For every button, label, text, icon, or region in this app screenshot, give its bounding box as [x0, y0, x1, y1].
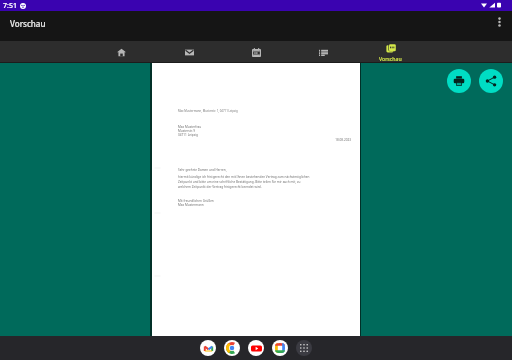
- staticText: Sehr geehrte Damen und Herren,: [178, 168, 227, 172]
- button[interactable]: More options: [490, 13, 508, 31]
- staticText: Max Mustermann, Musterstr. 1, 04711 Leip…: [178, 109, 238, 113]
- staticText: Vorschau: [379, 55, 402, 62]
- button[interactable]: Mail: [155, 41, 223, 63]
- button[interactable]: All apps: [296, 340, 312, 356]
- staticText: 7:51: [3, 1, 17, 11]
- button[interactable]: Vorschau: [357, 41, 424, 63]
- staticText: hiermit kündige ich fristgerecht den mit…: [178, 175, 314, 189]
- staticText: Max Mustermann: [178, 203, 204, 207]
- staticText: 18.08.2023: [178, 138, 351, 142]
- button[interactable]: Calendar: [223, 41, 290, 63]
- staticText: Max Musterfrau: [178, 125, 202, 129]
- button[interactable]: YouTube: [248, 340, 264, 356]
- staticText: 04711 Leipzig: [178, 133, 198, 137]
- button[interactable]: Share: [479, 69, 503, 93]
- button[interactable]: Gmail: [200, 340, 216, 356]
- button[interactable]: Home: [87, 41, 155, 63]
- staticText: Musterstr. 9: [178, 129, 196, 133]
- button[interactable]: Chrome: [224, 340, 240, 356]
- staticText: Vorschau: [10, 18, 46, 29]
- button[interactable]: Print: [447, 69, 471, 93]
- button[interactable]: Details: [290, 41, 357, 63]
- staticText: Mit freundlichen Grüßen: [178, 199, 214, 203]
- button[interactable]: Photos: [272, 340, 288, 356]
